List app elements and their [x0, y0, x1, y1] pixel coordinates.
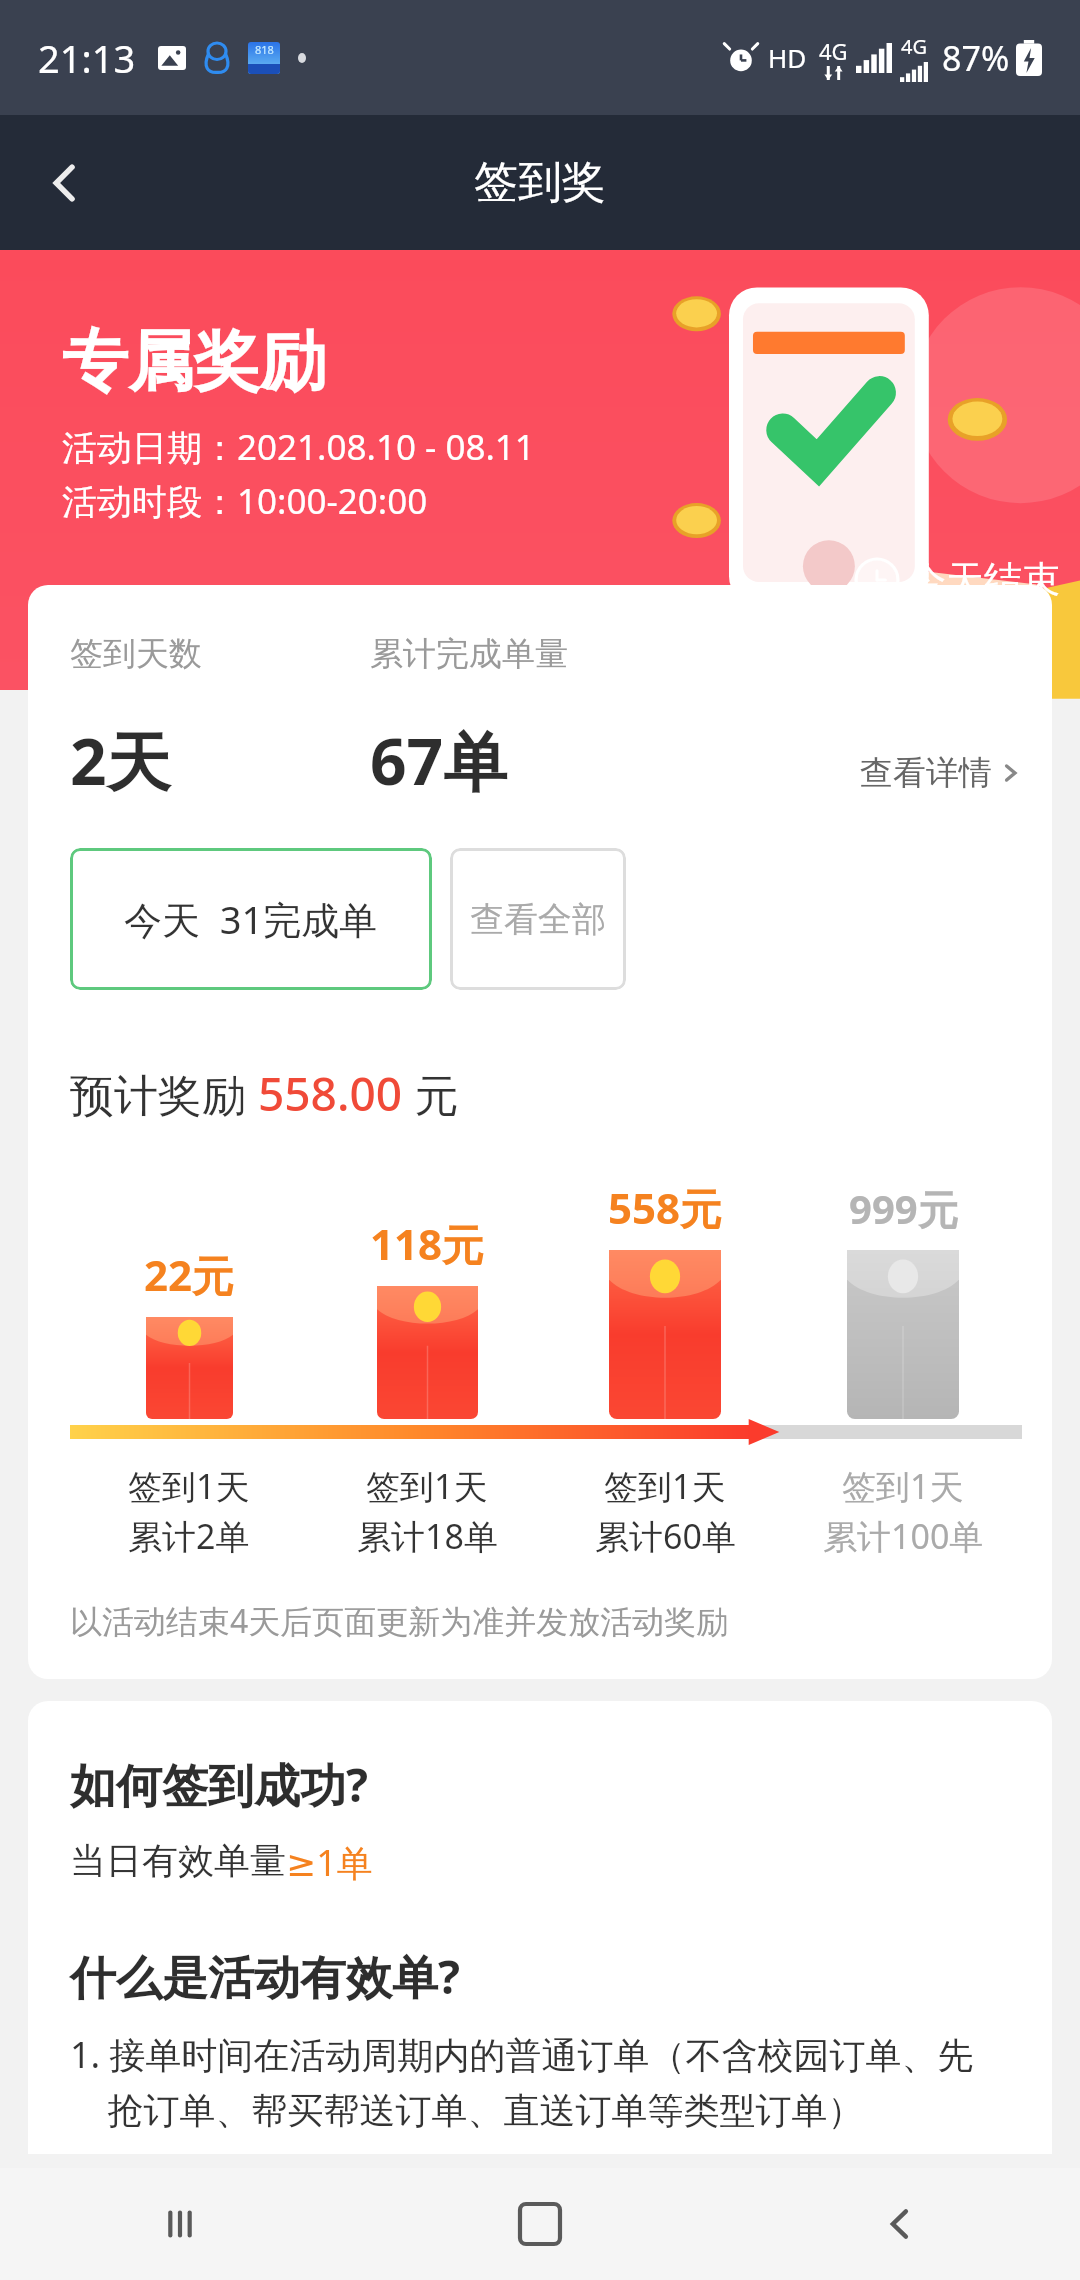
staticText: 累计18单: [357, 1513, 498, 1559]
staticText: 签到1天: [842, 1463, 964, 1509]
staticText: 如何签到成功?: [70, 1753, 368, 1816]
staticText: 预计奖励: [70, 1064, 258, 1124]
staticText: 以活动结束4天后页面更新为准并发放活动奖励: [70, 1599, 729, 1643]
staticText: 专属奖励: [62, 320, 326, 403]
staticText: 查看详情: [860, 752, 992, 794]
button[interactable]: Home: [360, 2168, 720, 2280]
button[interactable]: Back: [720, 2168, 1080, 2280]
staticText: 今天 31完成单: [124, 893, 378, 945]
staticText: 签到1天: [128, 1463, 250, 1509]
staticText: 4G: [901, 33, 927, 60]
staticText: ≥1单: [286, 1838, 373, 1887]
staticText: 118元: [370, 1215, 485, 1272]
button[interactable]: Recents: [0, 2168, 360, 2280]
staticText: 元: [403, 1064, 459, 1124]
staticText: 558.00: [258, 1062, 403, 1125]
staticText: 67单: [370, 717, 508, 804]
button[interactable]: Back: [20, 138, 110, 228]
staticText: 558元: [608, 1179, 723, 1236]
staticText: 818: [255, 42, 274, 57]
staticText: 当日有效单量: [70, 1838, 286, 1883]
staticText: 今天结束: [908, 556, 1060, 604]
staticText: 累计完成单量: [370, 633, 568, 675]
staticText: 累计60单: [595, 1513, 736, 1559]
staticText: 累计2单: [128, 1513, 250, 1559]
button[interactable]: 今天 31完成单: [70, 848, 432, 990]
staticText: 1. 接单时间在活动周期内的普通订单（不含校园订单、先 抢订单、帮买帮送订单、直…: [70, 2030, 974, 2134]
staticText: 活动时段：10:00-20:00: [62, 477, 428, 525]
staticText: 22元: [144, 1246, 235, 1303]
staticText: 活动日期：2021.08.10 - 08.11: [62, 423, 535, 471]
staticText: 签到1天: [366, 1463, 488, 1509]
staticText: 2天: [70, 717, 171, 804]
button[interactable]: 查看详情: [860, 752, 1022, 794]
staticText: 累计100单: [823, 1513, 984, 1559]
staticText: 签到奖: [474, 155, 606, 210]
staticText: 87%: [942, 35, 1010, 81]
button[interactable]: 查看全部: [450, 848, 626, 990]
staticText: 什么是活动有效单?: [70, 1945, 460, 2008]
staticText: 21:13: [38, 32, 136, 84]
staticText: HD: [768, 40, 807, 75]
staticText: 查看全部: [470, 898, 606, 941]
staticText: 签到天数: [70, 633, 202, 675]
staticText: 签到1天: [604, 1463, 726, 1509]
staticText: 999元: [849, 1181, 958, 1236]
staticText: 4G: [819, 36, 848, 66]
